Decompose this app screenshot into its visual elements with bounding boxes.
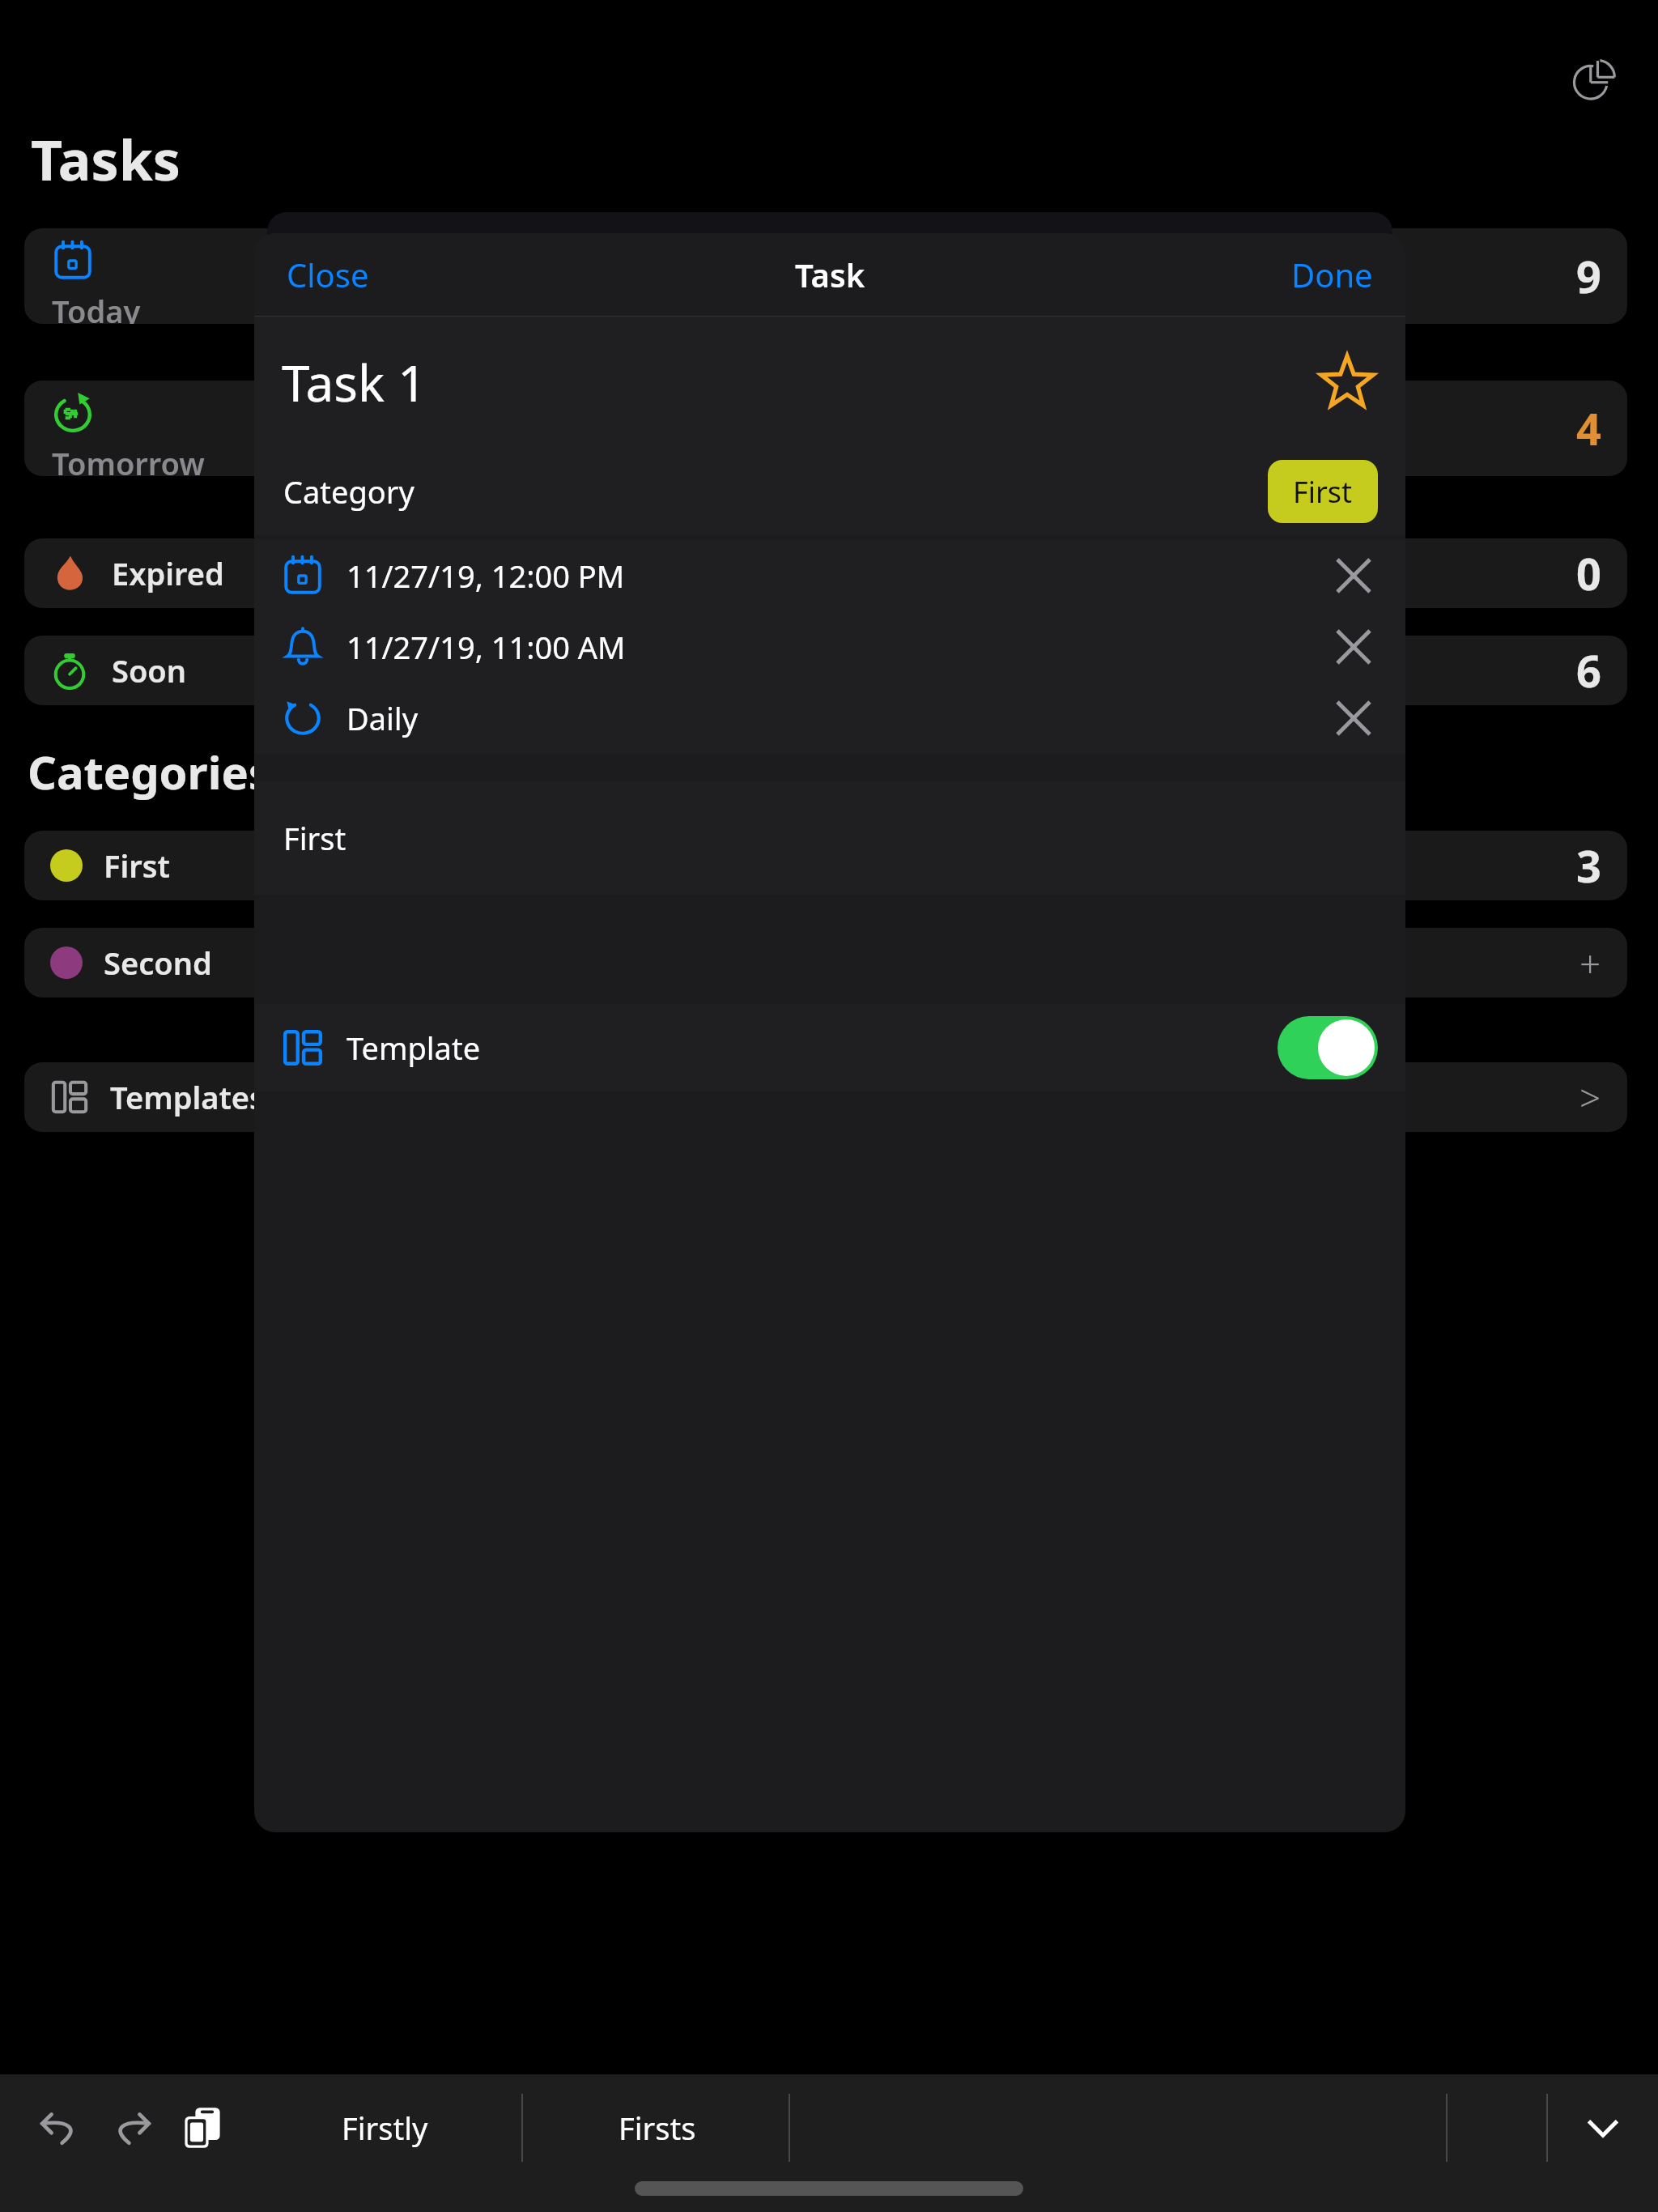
button[interactable]: First <box>254 781 1405 895</box>
staticText: Task <box>795 253 865 296</box>
button[interactable]: Template <box>254 1004 1405 1091</box>
staticText: Categories <box>28 741 271 802</box>
staticText: Firsts <box>619 2107 696 2149</box>
staticText: 3 <box>1576 836 1601 895</box>
button[interactable]: Hide keyboard <box>1566 2091 1640 2165</box>
staticText: Category <box>283 470 414 513</box>
staticText: 9 <box>1576 246 1601 306</box>
staticText: First <box>104 844 170 887</box>
button[interactable]: Remove 11/27/19, 11:00 AM <box>1318 611 1389 683</box>
staticText: First <box>1293 472 1353 512</box>
button[interactable]: Favorite <box>1305 340 1389 424</box>
button[interactable]: Daily <box>254 683 1405 754</box>
staticText: 4 <box>1576 398 1601 458</box>
button[interactable]: Soon <box>24 636 1627 705</box>
button[interactable]: Remove 11/27/19, 12:00 PM <box>1318 540 1389 611</box>
staticText: 11/27/19, 11:00 AM <box>346 626 626 668</box>
button[interactable]: Redo <box>96 2092 167 2163</box>
staticText: First <box>283 817 346 859</box>
button[interactable]: Done <box>1273 243 1391 306</box>
staticText: 11/27/19, 12:00 PM <box>346 555 625 597</box>
staticText: + <box>1579 938 1601 989</box>
staticText: Expired <box>112 552 224 594</box>
staticText: Daily <box>346 697 419 739</box>
button[interactable]: 11/27/19, 11:00 AM <box>254 611 1405 683</box>
staticText: 6 <box>1576 640 1601 700</box>
staticText: Soon <box>112 649 187 691</box>
button[interactable]: Tomorrow <box>24 381 1627 476</box>
button[interactable]: Expired <box>24 538 1627 608</box>
button[interactable]: Category <box>254 448 1405 535</box>
button[interactable]: Close <box>269 243 387 306</box>
staticText: Task 1 <box>282 348 427 416</box>
button[interactable]: First <box>24 831 1627 900</box>
staticText: > <box>1579 1072 1601 1123</box>
staticText: Firstly <box>342 2107 428 2149</box>
button[interactable]: Template toggle, on <box>1278 1016 1378 1079</box>
staticText: Template <box>346 1027 481 1069</box>
button[interactable]: Undo <box>24 2092 96 2163</box>
button[interactable]: Today <box>24 228 1627 324</box>
button[interactable]: 11/27/19, 12:00 PM <box>254 540 1405 611</box>
button[interactable]: Templates <box>24 1062 1627 1132</box>
staticText: 0 <box>1576 543 1601 603</box>
staticText: Second <box>104 942 212 984</box>
staticText: Tomorrow <box>52 442 205 476</box>
staticText: Close <box>287 253 369 296</box>
button[interactable]: Paste <box>167 2092 238 2163</box>
staticText: Templates <box>110 1076 265 1118</box>
staticText: Done <box>1291 253 1373 296</box>
button[interactable]: Remove Daily <box>1318 683 1389 754</box>
button[interactable]: Second <box>24 928 1627 998</box>
staticText: Today <box>52 290 141 324</box>
staticText: Tasks <box>31 121 181 197</box>
button[interactable]: Statistics <box>1558 45 1631 117</box>
